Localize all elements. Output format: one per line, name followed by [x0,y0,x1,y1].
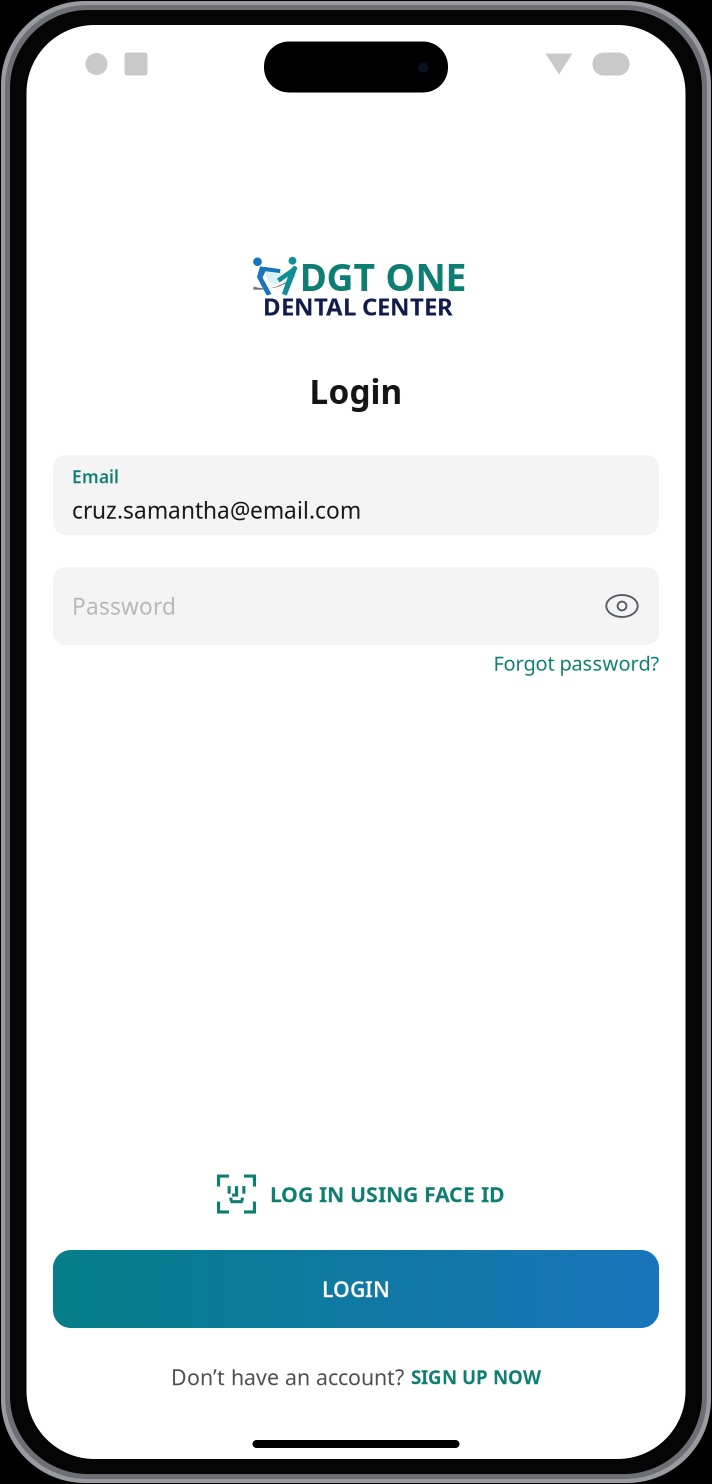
staticText: DENTAL CENTER [263,290,453,322]
staticText: Password [72,591,176,621]
button[interactable]: LOG IN USING FACE ID [217,1174,505,1213]
button[interactable]: LOGIN [53,1250,659,1328]
staticText: Login [309,369,402,413]
staticText: Email [72,465,119,488]
staticText: SIGN UP NOW [411,1365,541,1389]
button[interactable]: Forgot password? [491,643,661,683]
staticText: LOGIN [322,1275,390,1303]
staticText: LOG IN USING FACE ID [270,1180,505,1208]
button[interactable]: Don’t have an account? [171,1359,541,1395]
staticText: Don’t have an account? [171,1363,404,1391]
button[interactable]: Show password [596,580,648,632]
staticText: DGT ONE [299,252,466,301]
staticText: Forgot password? [493,650,659,676]
staticText: cruz.samantha@email.com [72,495,361,525]
